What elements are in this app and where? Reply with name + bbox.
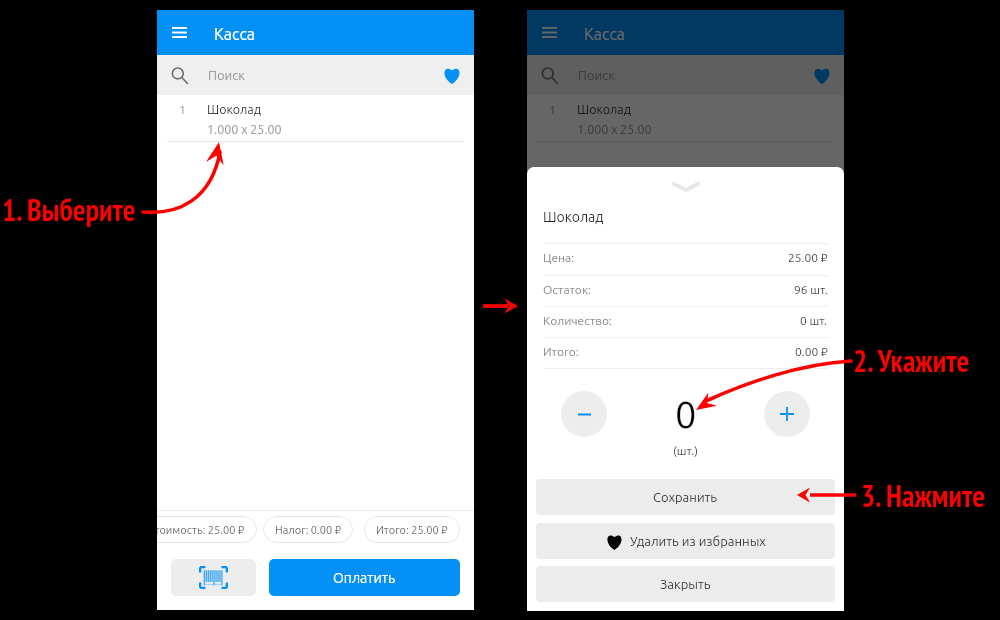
button[interactable]: Increase <box>764 391 810 437</box>
staticText: Налог: 0.00 ₽ <box>275 524 341 536</box>
staticText: Стоимость: 25.00 ₽ <box>157 524 245 536</box>
staticText: Сохранить <box>653 490 718 505</box>
staticText: Касса <box>584 25 626 43</box>
staticText: 0 <box>675 393 697 436</box>
staticText: Шоколад <box>207 102 262 116</box>
staticText: 3. Нажмите <box>861 476 986 515</box>
button[interactable]: 1 <box>157 95 474 142</box>
button[interactable]: Menu <box>157 10 202 55</box>
staticText: Касса <box>214 25 256 43</box>
staticText: Итого: <box>543 345 579 358</box>
staticText: 2. Укажите <box>853 341 970 380</box>
button[interactable]: Decrease <box>561 391 607 437</box>
staticText: Шоколад <box>543 209 604 225</box>
staticText: (шт.) <box>673 444 699 457</box>
button[interactable]: Collapse <box>666 176 706 198</box>
staticText: Шоколад <box>577 102 632 116</box>
staticText: 1 <box>179 103 186 116</box>
staticText: Удалить из избранных <box>630 534 766 549</box>
button[interactable]: Налог: 0.00 ₽ <box>263 516 353 543</box>
button[interactable]: Scan barcode <box>171 559 256 596</box>
button[interactable]: Оплатить <box>269 559 460 596</box>
staticText: Итого: 25.00 ₽ <box>376 524 448 536</box>
staticText: 96 шт. <box>794 283 828 296</box>
staticText: 0.00 ₽ <box>795 345 828 358</box>
staticText: Цена: <box>543 251 575 264</box>
button[interactable]: Favorites <box>430 55 474 95</box>
staticText: Закрыть <box>660 577 711 592</box>
staticText: 0 шт. <box>800 314 828 327</box>
staticText: 1.000 x 25.00 <box>577 122 652 136</box>
button[interactable]: Стоимость: 25.00 ₽ <box>157 516 257 543</box>
staticText: Поиск <box>208 68 246 83</box>
staticText: Остаток: <box>543 283 592 296</box>
staticText: Поиск <box>578 68 616 83</box>
staticText: Оплатить <box>333 570 396 586</box>
button[interactable]: Итого: 25.00 ₽ <box>364 516 460 543</box>
button[interactable]: Сохранить <box>536 479 835 515</box>
staticText: 25.00 ₽ <box>788 251 828 264</box>
button[interactable]: Удалить из избранных <box>536 523 835 559</box>
staticText: 1. Выберите <box>2 190 136 229</box>
button[interactable]: Search <box>157 55 201 95</box>
button[interactable]: Закрыть <box>536 566 835 602</box>
staticText: Количество: <box>543 314 612 327</box>
staticText: 1 <box>549 103 556 116</box>
staticText: 1.000 x 25.00 <box>207 122 282 136</box>
